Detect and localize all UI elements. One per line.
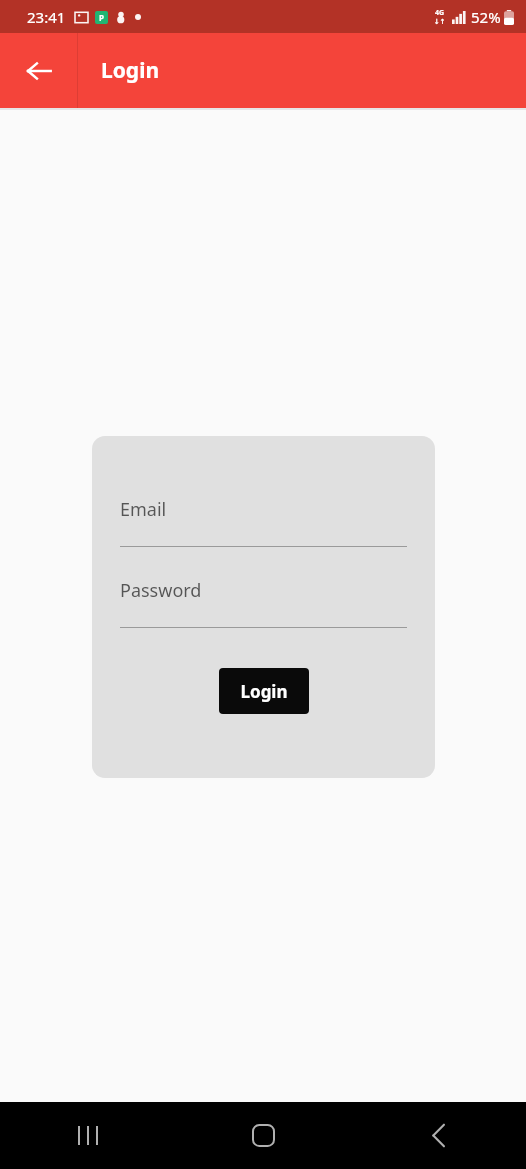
- staticText: Login: [101, 56, 160, 85]
- button[interactable]: Home: [176, 1102, 351, 1169]
- staticText: P: [99, 12, 104, 23]
- button[interactable]: Email: [120, 497, 407, 547]
- button[interactable]: Back: [351, 1102, 526, 1169]
- button[interactable]: Back: [0, 33, 77, 108]
- staticText: Email: [120, 497, 167, 522]
- staticText: Password: [120, 578, 202, 603]
- staticText: 52%: [471, 7, 501, 27]
- staticText: 23:41: [27, 7, 66, 27]
- staticText: ↓↑: [434, 18, 446, 26]
- button[interactable]: Login: [219, 668, 309, 714]
- button[interactable]: Recent apps: [0, 1102, 176, 1169]
- button[interactable]: Password: [120, 578, 407, 628]
- staticText: 4G: [435, 8, 445, 18]
- staticText: Login: [240, 680, 288, 703]
